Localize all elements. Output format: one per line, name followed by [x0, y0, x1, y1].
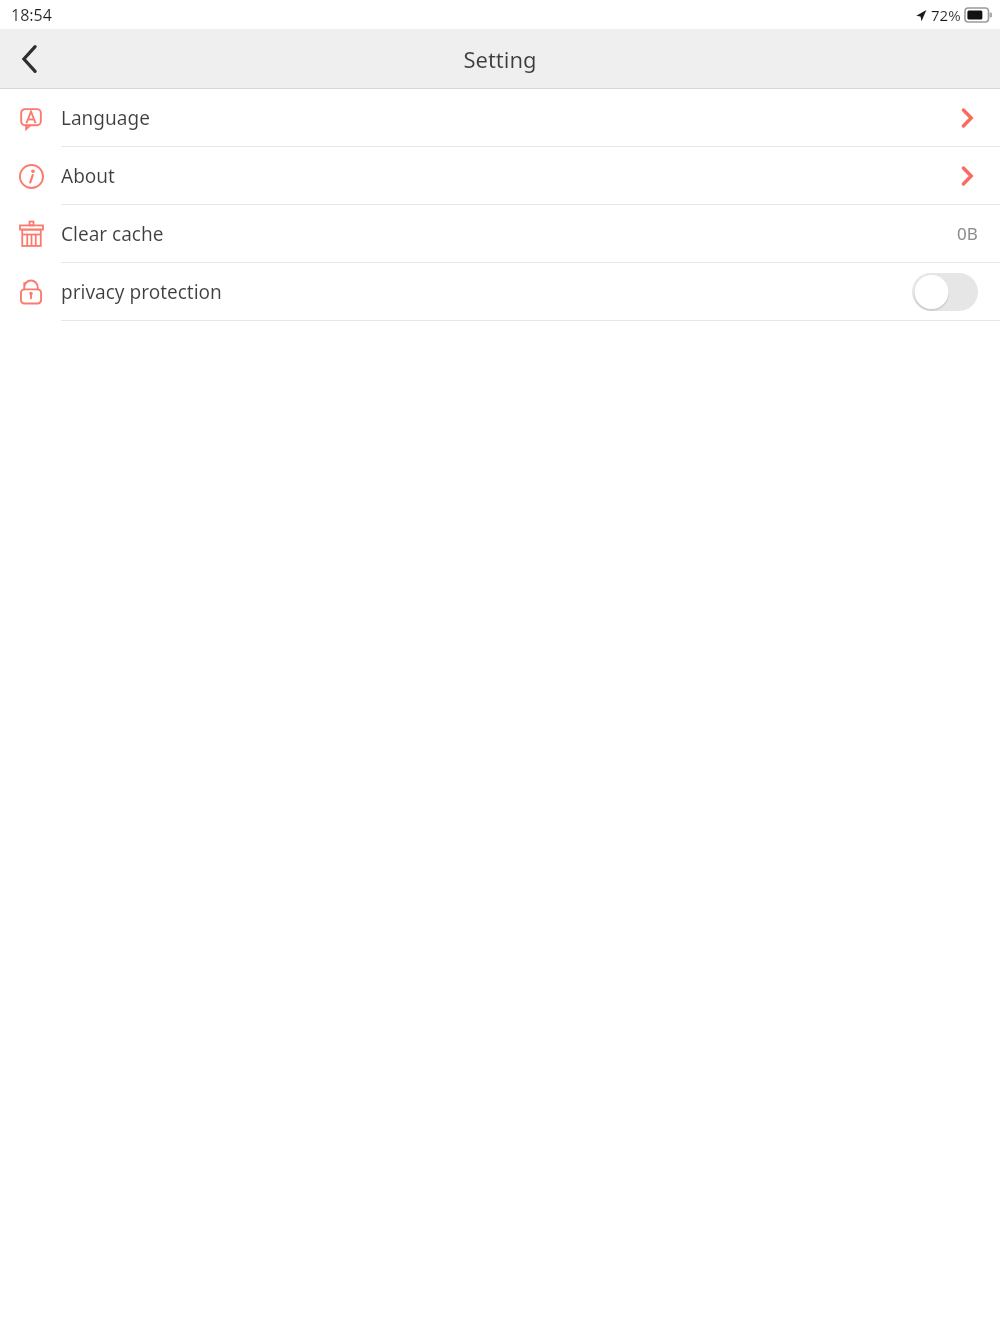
staticText: 18:54	[11, 4, 52, 26]
staticText: 0B	[957, 222, 978, 245]
button[interactable]: Clear cache	[0, 205, 1000, 262]
button[interactable]: About	[0, 147, 1000, 204]
staticText: About	[61, 163, 115, 189]
button[interactable]: privacy protection toggle	[912, 273, 978, 311]
button[interactable]: privacy protection	[0, 263, 1000, 320]
button[interactable]: Language	[0, 89, 1000, 146]
button[interactable]: Back	[0, 29, 60, 89]
staticText: Clear cache	[61, 221, 164, 247]
staticText: 72%	[931, 5, 961, 25]
staticText: Language	[61, 105, 150, 131]
staticText: privacy protection	[61, 279, 222, 305]
staticText: Setting	[463, 44, 537, 74]
